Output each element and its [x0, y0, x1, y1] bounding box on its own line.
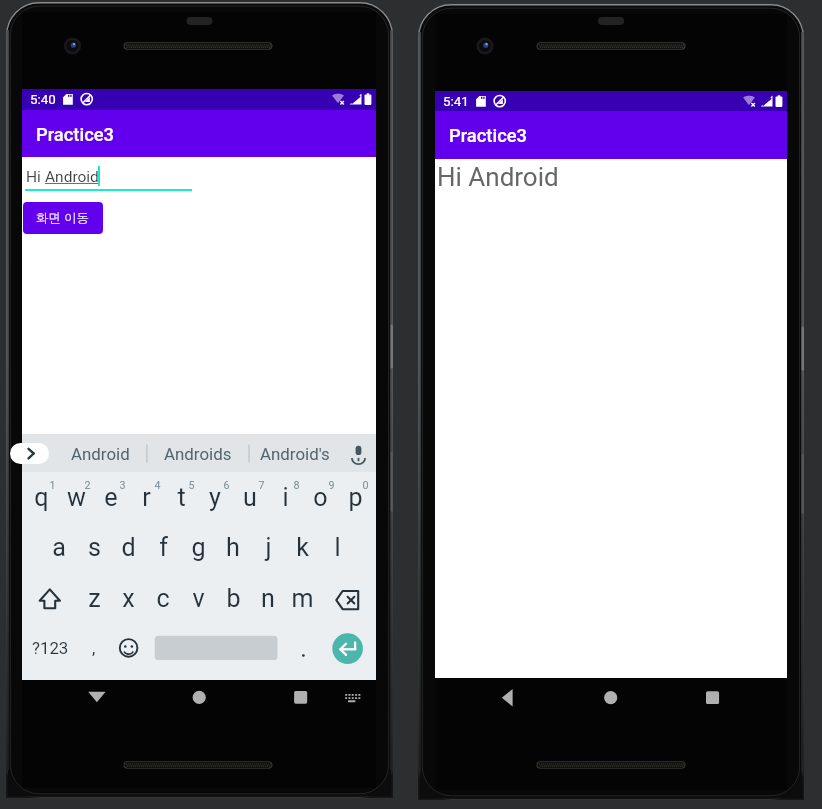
staticText: 0 [362, 479, 369, 492]
button[interactable]: v [181, 584, 215, 619]
staticText: 4 [154, 479, 161, 492]
button[interactable]: 4 [140, 479, 174, 498]
button[interactable]: u [233, 483, 267, 518]
button[interactable]: ?123 [20, 638, 80, 662]
staticText: 6 [223, 479, 230, 492]
button[interactable]: j [251, 533, 285, 568]
staticText: o [313, 483, 328, 512]
button[interactable]: n [251, 584, 285, 619]
staticText: q [34, 483, 49, 512]
staticText: r [142, 483, 151, 512]
staticText: 2 [84, 479, 91, 492]
staticText: Android [71, 444, 130, 464]
button[interactable]: 7 [244, 479, 278, 498]
staticText: b [226, 584, 241, 613]
staticText: z [88, 584, 101, 613]
button[interactable]: h [216, 533, 250, 568]
button[interactable]: z [77, 584, 111, 619]
staticText: x [122, 584, 135, 613]
button[interactable]: 2 [70, 479, 104, 498]
staticText: Androids [164, 444, 232, 464]
button[interactable]: d [111, 533, 145, 568]
staticText: Practice3 [449, 125, 527, 146]
button[interactable]: c [146, 584, 180, 619]
button[interactable]: 1 [35, 479, 69, 498]
staticText: c [156, 584, 170, 613]
button[interactable]: m [285, 584, 319, 619]
staticText: n [261, 584, 275, 613]
staticText: e [104, 483, 118, 512]
staticText: i [282, 483, 289, 512]
staticText: h [226, 533, 240, 562]
button[interactable]: k [285, 533, 319, 568]
button[interactable]: 5 [174, 479, 208, 498]
button[interactable]: Androids [154, 434, 242, 472]
button[interactable]: b [216, 584, 250, 619]
button[interactable]: Expand suggestions [10, 443, 49, 464]
button[interactable]: g [181, 533, 215, 568]
staticText: 9 [328, 479, 335, 492]
button[interactable]: p [338, 483, 372, 518]
staticText: u [243, 483, 257, 512]
button[interactable]: Home [589, 678, 633, 724]
button[interactable]: 9 [314, 479, 348, 498]
staticText: g [191, 533, 206, 562]
staticText: , [92, 638, 96, 658]
button[interactable]: e [94, 483, 128, 518]
button[interactable]: o [303, 483, 337, 518]
button[interactable]: q [24, 483, 58, 518]
staticText: l [334, 533, 341, 562]
button[interactable]: x [111, 584, 145, 619]
button[interactable]: Recent apps [279, 680, 323, 726]
button[interactable]: Hi Android [437, 162, 559, 192]
staticText: a [52, 533, 66, 562]
button[interactable]: 화면 이동 [23, 202, 103, 234]
staticText: Hi [26, 168, 45, 186]
button[interactable]: 6 [209, 479, 243, 498]
staticText: k [296, 533, 309, 562]
button[interactable]: Switch keyboard [334, 680, 370, 726]
button[interactable]: f [146, 533, 180, 568]
staticText: 3 [119, 479, 126, 492]
button[interactable]: Android's [251, 434, 339, 472]
button[interactable]: w [59, 483, 93, 518]
button[interactable]: , [79, 638, 109, 662]
button[interactable]: Recent apps [691, 678, 735, 724]
staticText: 8 [293, 479, 300, 492]
staticText: y [209, 483, 221, 512]
button[interactable]: Hi [26, 168, 99, 186]
button[interactable]: l [320, 533, 354, 568]
staticText: d [121, 533, 136, 562]
staticText: Practice3 [36, 124, 114, 145]
staticText: p [348, 483, 363, 512]
staticText: 화면 이동 [36, 210, 90, 226]
staticText: 5 [188, 479, 195, 492]
button[interactable]: 8 [279, 479, 313, 498]
staticText: m [291, 584, 314, 613]
button[interactable]: Android [56, 434, 144, 472]
button[interactable]: a [42, 533, 76, 568]
button[interactable]: 0 [348, 479, 382, 498]
staticText: 5:41 [443, 94, 469, 110]
staticText: 5:40 [30, 92, 56, 108]
staticText: ?123 [32, 638, 69, 658]
staticText: Android's [260, 444, 330, 464]
staticText: f [159, 533, 168, 562]
button[interactable]: i [268, 483, 302, 518]
staticText: Android [45, 168, 99, 186]
button[interactable]: 3 [105, 479, 139, 498]
staticText: 7 [258, 479, 265, 492]
button[interactable]: t [164, 483, 198, 518]
staticText: j [265, 533, 272, 562]
staticText: 1 [49, 479, 56, 492]
staticText: v [192, 584, 205, 613]
button[interactable]: s [77, 533, 111, 568]
button[interactable]: Back [485, 678, 529, 724]
button[interactable]: r [129, 483, 163, 518]
button[interactable]: y [198, 483, 232, 518]
staticText: w [67, 483, 86, 512]
staticText: t [177, 483, 186, 512]
button[interactable]: Hide keyboard [75, 680, 119, 726]
button[interactable]: Home [177, 680, 221, 726]
staticText: s [88, 533, 101, 562]
